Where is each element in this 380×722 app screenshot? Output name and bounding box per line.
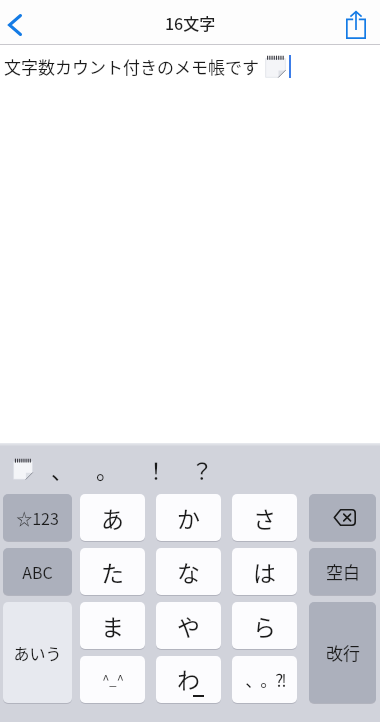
button[interactable]: ^_^ bbox=[80, 656, 145, 703]
staticText: た bbox=[101, 555, 124, 588]
button[interactable]: 改行 bbox=[309, 602, 376, 703]
staticText: 、 bbox=[51, 453, 74, 485]
button[interactable]: wa bbox=[156, 656, 221, 703]
button[interactable]: ABC bbox=[3, 548, 72, 595]
staticText: 、。?! bbox=[245, 667, 285, 692]
button[interactable]: ☆123 bbox=[3, 494, 72, 541]
button[interactable]: 、 bbox=[40, 443, 84, 494]
staticText: 。 bbox=[96, 453, 119, 485]
staticText: や bbox=[177, 609, 200, 642]
staticText: な bbox=[177, 555, 200, 588]
staticText: か bbox=[177, 501, 200, 534]
staticText: ら bbox=[253, 609, 276, 642]
staticText: 空白 bbox=[326, 559, 360, 584]
button[interactable]: た bbox=[80, 548, 145, 595]
button[interactable]: 空白 bbox=[309, 548, 376, 595]
button[interactable]: 。 bbox=[85, 443, 129, 494]
button[interactable]: Notepad bbox=[1, 443, 45, 494]
staticText: ！ bbox=[145, 453, 168, 485]
staticText: ABC bbox=[22, 560, 53, 583]
button[interactable]: は bbox=[232, 548, 297, 595]
button[interactable]: な bbox=[156, 548, 221, 595]
staticText: は bbox=[253, 555, 276, 588]
button[interactable]: ま bbox=[80, 602, 145, 649]
staticText: 文字数カウント付きのメモ帳です bbox=[4, 54, 259, 79]
button[interactable]: あ bbox=[80, 494, 145, 541]
button[interactable]: ！ bbox=[134, 443, 178, 494]
staticText: 16文字 bbox=[165, 11, 216, 34]
button[interactable]: さ bbox=[232, 494, 297, 541]
staticText: ま bbox=[101, 609, 124, 642]
staticText: あいう bbox=[13, 641, 62, 664]
staticText: ？ bbox=[191, 453, 214, 485]
button[interactable]: か bbox=[156, 494, 221, 541]
button[interactable]: Back bbox=[0, 0, 44, 44]
staticText: わ bbox=[177, 662, 200, 695]
button[interactable]: 、。?! bbox=[232, 656, 297, 703]
button[interactable]: ？ bbox=[180, 443, 224, 494]
button[interactable]: Share bbox=[336, 0, 380, 44]
button[interactable]: Delete bbox=[309, 494, 376, 541]
staticText: 改行 bbox=[326, 640, 360, 665]
button[interactable]: や bbox=[156, 602, 221, 649]
staticText: ^_^ bbox=[102, 670, 124, 689]
staticText: ☆123 bbox=[16, 506, 59, 529]
button[interactable]: あいう bbox=[3, 602, 72, 703]
staticText: さ bbox=[253, 501, 276, 534]
staticText: あ bbox=[101, 501, 124, 534]
button[interactable]: ら bbox=[232, 602, 297, 649]
